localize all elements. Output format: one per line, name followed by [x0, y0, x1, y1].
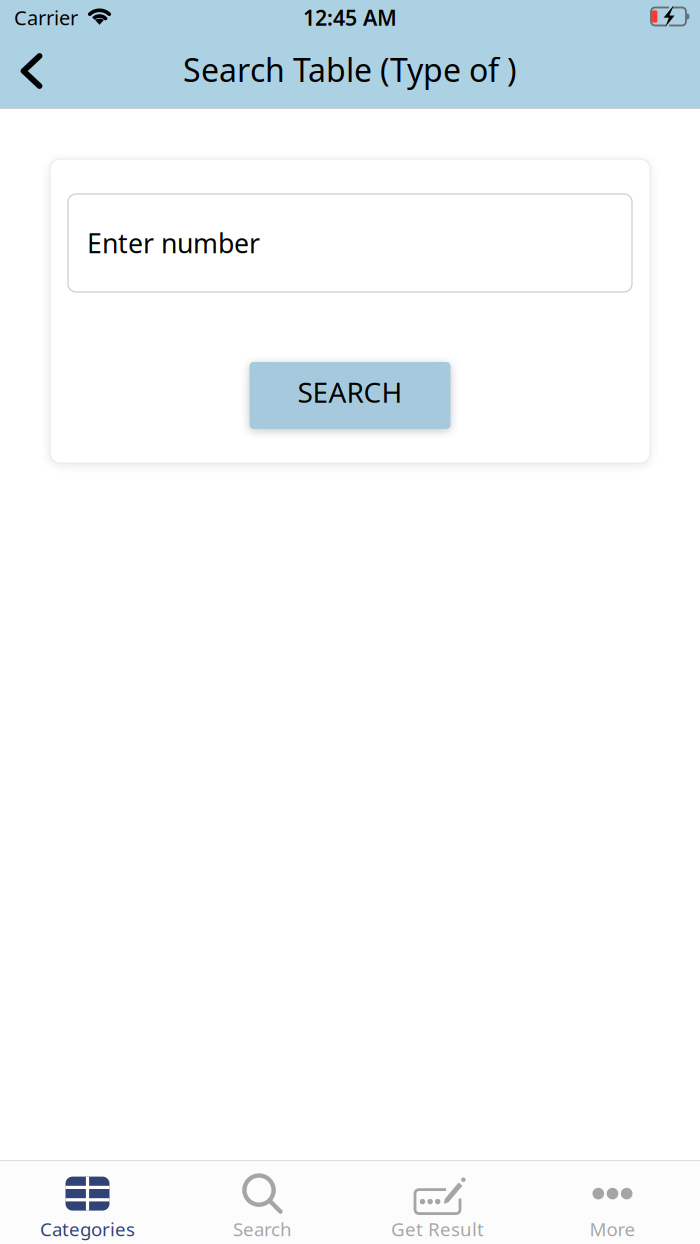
staticText: Search Table (Type of ): [183, 48, 517, 91]
staticText: 12:45 AM: [303, 3, 397, 32]
button[interactable]: Categories: [0, 1159, 175, 1244]
staticText: Enter number: [87, 225, 260, 261]
staticText: More: [589, 1217, 635, 1241]
staticText: Categories: [40, 1217, 135, 1241]
button[interactable]: Get Result: [350, 1159, 525, 1244]
staticText: Get Result: [391, 1217, 484, 1241]
button[interactable]: Back: [0, 36, 63, 108]
button[interactable]: More: [525, 1159, 700, 1244]
staticText: SEARCH: [297, 373, 402, 411]
button[interactable]: SEARCH: [249, 362, 450, 429]
button[interactable]: Enter number: [68, 194, 632, 292]
button[interactable]: Search: [175, 1159, 350, 1244]
staticText: Search: [233, 1217, 292, 1241]
staticText: Carrier: [14, 4, 78, 31]
